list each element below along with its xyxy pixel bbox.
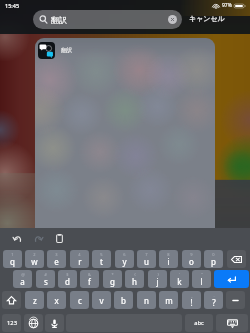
staticText: p (211, 256, 216, 267)
staticText: ) (157, 272, 159, 277)
button[interactable]: , (182, 291, 201, 309)
button[interactable]: c (70, 291, 89, 309)
staticText: 8 (167, 252, 170, 257)
staticText: 2 (33, 252, 36, 257)
staticText: 1 (11, 252, 14, 257)
staticText: i (167, 256, 170, 267)
staticText: 6 (123, 252, 126, 257)
button[interactable]: abc (185, 314, 213, 332)
staticText: abc (194, 319, 204, 327)
button[interactable]: 5 (92, 250, 111, 268)
staticText: h (132, 276, 137, 287)
button[interactable]: Delete (226, 291, 245, 309)
staticText: k (177, 276, 182, 287)
button[interactable]: キャンセル (189, 14, 225, 23)
staticText: r (78, 256, 82, 267)
button[interactable]: Backspace (227, 250, 246, 268)
staticText: ( (134, 272, 136, 277)
staticText: 15:45 (5, 2, 20, 9)
button[interactable]: Redo (32, 232, 45, 245)
staticText: x (54, 295, 59, 306)
staticText: " (201, 272, 203, 277)
button[interactable]: Hide keyboard (216, 314, 248, 332)
button[interactable]: x (47, 291, 66, 309)
staticText: a (20, 276, 25, 287)
button[interactable]: 9 (182, 250, 201, 268)
staticText: 3 (55, 252, 58, 257)
staticText: 123 (7, 319, 17, 327)
button[interactable]: n (137, 291, 156, 309)
button[interactable]: 6 (115, 250, 134, 268)
button[interactable]: Change language (24, 314, 43, 332)
staticText: キャンセル (189, 14, 225, 23)
staticText: b (121, 295, 126, 306)
button[interactable]: 1 (3, 250, 22, 268)
button[interactable]: ) (148, 270, 167, 288)
staticText: l (200, 276, 203, 287)
staticText: , (191, 293, 193, 298)
staticText: w (31, 256, 38, 267)
button[interactable]: * (103, 270, 122, 288)
staticText: s (44, 276, 48, 287)
button[interactable]: 7 (137, 250, 156, 268)
staticText: t (100, 256, 103, 267)
staticText: f (88, 276, 91, 287)
staticText: ? (212, 297, 216, 308)
staticText: c (78, 295, 82, 306)
button[interactable]: 4 (70, 250, 89, 268)
staticText: 97% (222, 2, 232, 9)
staticText: # (44, 272, 47, 277)
staticText: e (54, 256, 59, 267)
button[interactable]: Dictate (45, 314, 64, 332)
staticText: d (65, 276, 70, 287)
button[interactable]: 123 (2, 314, 21, 332)
button[interactable]: 2 (25, 250, 44, 268)
staticText: 4 (78, 252, 81, 257)
button[interactable]: Paste (53, 232, 66, 245)
staticText: * (111, 272, 114, 277)
button[interactable]: . (204, 291, 223, 309)
staticText: @ (21, 272, 25, 277)
button[interactable]: Return (214, 270, 249, 288)
button[interactable]: b (114, 291, 133, 309)
button[interactable]: Undo (11, 232, 24, 245)
staticText: 7 (145, 252, 148, 257)
button[interactable]: 3 (47, 250, 66, 268)
staticText: o (189, 256, 194, 267)
staticText: y (122, 256, 127, 267)
staticText: v (99, 295, 104, 306)
staticText: q (10, 256, 15, 267)
button[interactable]: ' (170, 270, 189, 288)
button[interactable]: z (25, 291, 44, 309)
staticText: 9 (190, 252, 193, 257)
button[interactable]: ( (125, 270, 144, 288)
staticText: j (156, 276, 159, 287)
button[interactable]: & (80, 270, 99, 288)
button[interactable]: 8 (159, 250, 178, 268)
button[interactable]: Clear text (168, 15, 177, 24)
staticText: 0 (212, 252, 215, 257)
button[interactable]: @ (13, 270, 32, 288)
button[interactable]: m (159, 291, 178, 309)
staticText: ' (179, 272, 180, 277)
button[interactable]: " (192, 270, 211, 288)
staticText: z (33, 295, 37, 306)
staticText: g (110, 276, 115, 287)
staticText: n (144, 295, 149, 306)
button[interactable]: 翻訳 (33, 10, 182, 29)
staticText: $ (66, 272, 69, 277)
staticText: & (88, 272, 91, 277)
staticText: 翻訳 (51, 15, 67, 25)
button[interactable]: v (92, 291, 111, 309)
button[interactable]: 翻訳 (38, 40, 158, 60)
button[interactable]: # (36, 270, 55, 288)
staticText: 5 (100, 252, 103, 257)
button[interactable]: Shift (2, 291, 21, 309)
button[interactable]: $ (58, 270, 77, 288)
button[interactable]: 0 (204, 250, 223, 268)
staticText: 翻訳 (61, 47, 72, 54)
staticText: ! (190, 297, 193, 308)
staticText: m (165, 295, 173, 306)
